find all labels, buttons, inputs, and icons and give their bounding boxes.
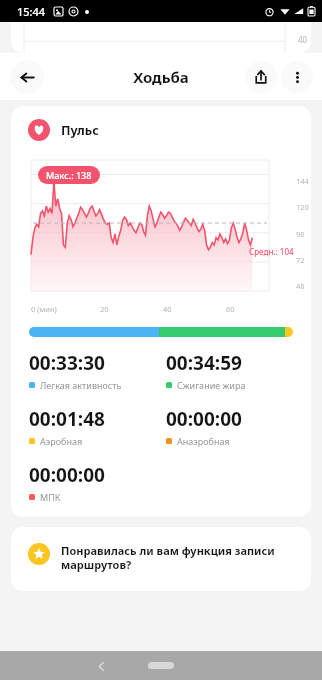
button[interactable]: 00:34:59 [166, 350, 293, 391]
staticText: 40 [298, 34, 308, 45]
button[interactable]: Понравилась ли вам функция записи маршру… [11, 527, 311, 591]
staticText: Ходьба [133, 67, 189, 87]
staticText: 0 (мин) [31, 304, 57, 314]
staticText: Пульс [61, 122, 99, 139]
button[interactable]: Share [245, 61, 277, 93]
button[interactable]: Пульс [11, 119, 311, 141]
staticText: 15:44 [17, 4, 46, 19]
staticText: 00:34:59 [166, 350, 242, 376]
staticText: МПК [40, 491, 61, 503]
staticText: 60 [226, 304, 235, 314]
staticText: Легкая активность [40, 379, 122, 391]
button[interactable]: Home [148, 662, 174, 669]
staticText: 144 [296, 176, 309, 186]
staticText: 00:00:00 [29, 462, 105, 488]
button[interactable]: More options [281, 61, 313, 93]
button[interactable]: 00:00:00 [166, 406, 293, 447]
staticText: Средн.: 104 [249, 246, 294, 257]
staticText: 96 [296, 229, 305, 239]
staticText: 20 [100, 304, 109, 314]
staticText: 72 [296, 255, 305, 265]
staticText: 00:01:48 [29, 406, 105, 432]
staticText: 00:00:00 [166, 406, 242, 432]
staticText: Макс.: 138 [46, 169, 92, 181]
staticText: 00:33:30 [29, 350, 105, 376]
staticText: Аэробная [40, 435, 83, 447]
staticText: 120 [296, 202, 309, 212]
staticText: 48 [296, 281, 305, 291]
staticText: Понравилась ли вам функция записи маршру… [61, 543, 297, 572]
button[interactable]: Back [10, 60, 44, 94]
button[interactable]: Back [88, 653, 114, 679]
button[interactable]: 00:00:00 [29, 462, 156, 503]
staticText: 40 [163, 304, 172, 314]
button[interactable]: 00:33:30 [29, 350, 156, 391]
staticText: Сжигание жира [177, 379, 246, 391]
button[interactable]: 00:01:48 [29, 406, 156, 447]
staticText: Анаэробная [177, 435, 230, 447]
